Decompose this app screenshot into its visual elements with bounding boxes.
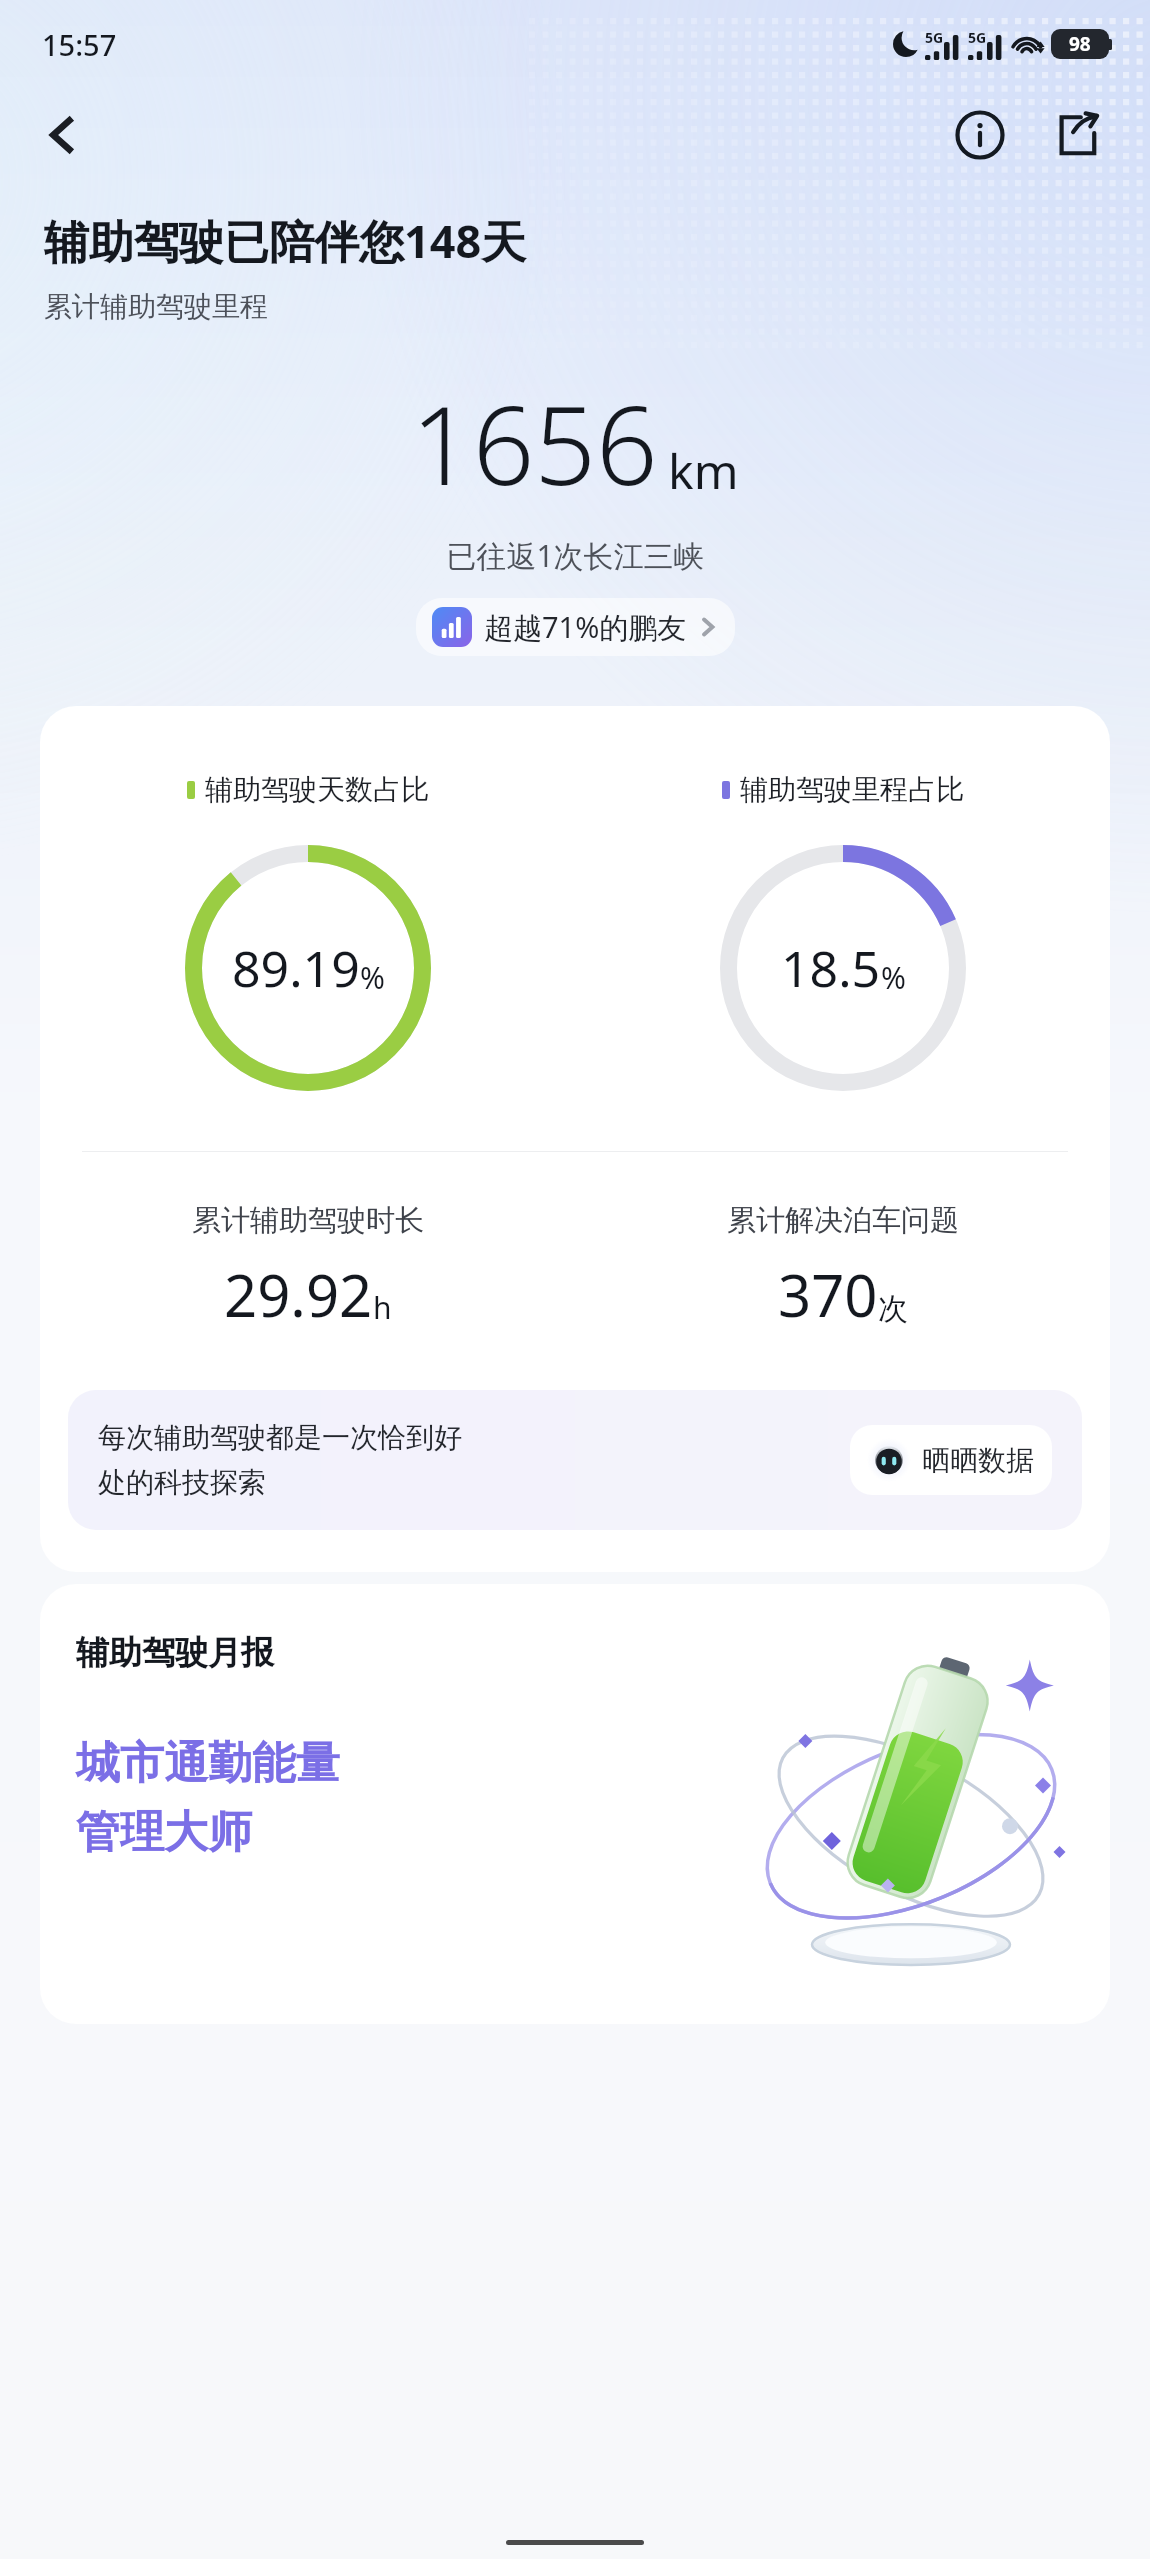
staticText: 15:57: [42, 25, 117, 64]
staticText: 城市通勤能量: [76, 1736, 340, 1791]
staticText: 18.5: [781, 934, 881, 1002]
staticText: 辅助驾驶已陪伴您148天: [44, 210, 527, 271]
button[interactable]: 分享: [1038, 97, 1114, 173]
staticText: 处的科技探索: [98, 1465, 266, 1500]
staticText: 管理大师: [76, 1805, 252, 1860]
staticText: 辅助驾驶里程占比: [740, 772, 964, 807]
staticText: 29.92: [224, 1255, 373, 1334]
staticText: 每次辅助驾驶都是一次恰到好: [98, 1420, 462, 1455]
staticText: 5G: [925, 28, 944, 47]
staticText: 370: [778, 1255, 878, 1334]
staticText: %: [881, 957, 906, 998]
button[interactable]: 返回: [26, 99, 98, 171]
staticText: 累计解决泊车问题: [727, 1202, 959, 1239]
staticText: 次: [878, 1290, 908, 1328]
staticText: 辅助驾驶月报: [76, 1632, 274, 1674]
staticText: 累计辅助驾驶时长: [192, 1202, 424, 1239]
staticText: 98: [1069, 31, 1091, 57]
staticText: 1656: [411, 370, 658, 517]
staticText: 晒晒数据: [922, 1443, 1034, 1478]
button[interactable]: 辅助驾驶月报: [40, 1584, 1110, 2024]
staticText: 5G: [968, 28, 987, 47]
staticText: h: [373, 1287, 392, 1328]
button[interactable]: 说明: [942, 97, 1018, 173]
button[interactable]: 超越71%的鹏友: [416, 598, 735, 656]
staticText: %: [360, 957, 385, 998]
staticText: 辅助驾驶天数占比: [205, 772, 429, 807]
staticText: 超越71%的鹏友: [484, 607, 687, 647]
button[interactable]: 晒晒数据: [850, 1425, 1052, 1495]
staticText: 已往返1次长江三峡: [0, 535, 1150, 576]
staticText: km: [668, 438, 739, 503]
staticText: 89.19: [232, 934, 360, 1002]
staticText: 累计辅助驾驶里程: [44, 289, 268, 324]
